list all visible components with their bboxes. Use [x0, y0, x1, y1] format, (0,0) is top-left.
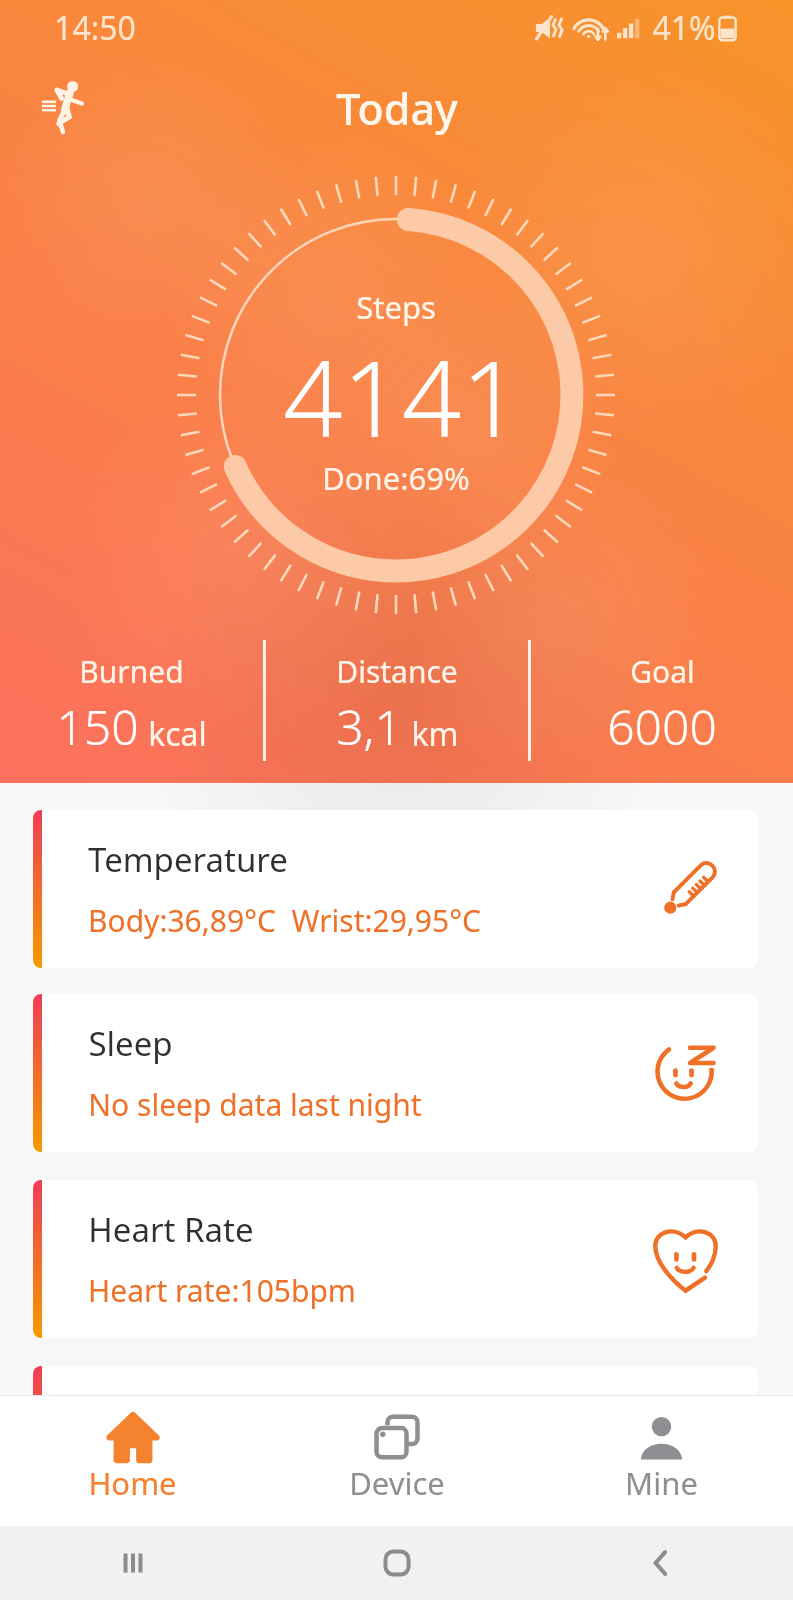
staticText: Today [336, 79, 458, 138]
staticText: SpO2:98% [88, 1456, 231, 1497]
staticText: Heart rate:105bpm [88, 1270, 356, 1311]
staticText: Burned [79, 651, 184, 692]
staticText: 14:50 [54, 6, 136, 50]
button[interactable]: Device [265, 1396, 529, 1526]
staticText: 3,1 [336, 694, 402, 759]
staticText: Heart Rate [88, 1207, 254, 1252]
staticText: 4141 [283, 326, 521, 468]
staticText: No sleep data last night [88, 1084, 422, 1125]
staticText: 150 [56, 694, 139, 759]
staticText: Blood Oxygen [88, 1393, 307, 1438]
staticText: Goal [630, 651, 695, 692]
button[interactable]: Temperature [33, 810, 758, 968]
button[interactable]: Activity [21, 66, 105, 150]
staticText: Sleep [88, 1021, 173, 1066]
staticText: Device [349, 1462, 445, 1504]
staticText: Done:69% [322, 457, 470, 499]
staticText: kcal [148, 712, 207, 756]
staticText: Distance [336, 651, 458, 692]
button[interactable]: Blood Oxygen [33, 1366, 758, 1524]
staticText: Body:36,89°C Wrist:29,95°C [88, 900, 481, 941]
staticText: Temperature [88, 837, 288, 882]
button[interactable]: Mine [529, 1396, 793, 1526]
staticText: 41% [652, 6, 716, 50]
button[interactable]: Heart Rate [33, 1180, 758, 1338]
staticText: Mine [625, 1462, 698, 1504]
staticText: 6000 [607, 694, 717, 759]
staticText: Steps [356, 286, 436, 328]
button[interactable]: Sleep [33, 994, 758, 1152]
staticText: km [411, 712, 459, 756]
staticText: Home [88, 1462, 177, 1504]
button[interactable]: Home [0, 1396, 265, 1526]
